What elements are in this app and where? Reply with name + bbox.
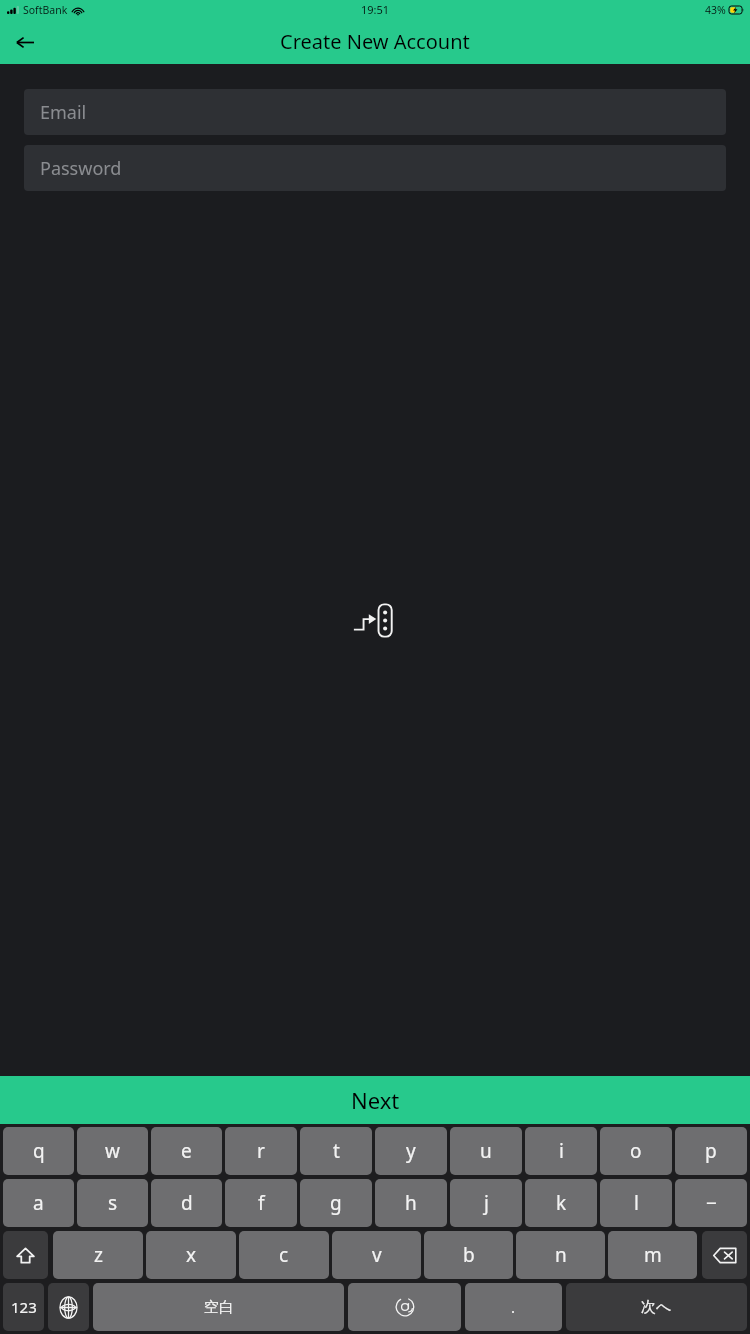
- button[interactable]: Switch keyboard: [48, 1283, 89, 1331]
- staticText: h: [405, 1190, 417, 1216]
- staticText: 43%: [705, 3, 726, 17]
- staticText: n: [555, 1242, 567, 1268]
- button[interactable]: t: [300, 1127, 372, 1175]
- staticText: Create New Account: [280, 28, 470, 55]
- staticText: a: [33, 1190, 44, 1216]
- staticText: u: [480, 1138, 492, 1164]
- button[interactable]: f: [225, 1179, 297, 1227]
- button[interactable]: h: [375, 1179, 447, 1227]
- button[interactable]: q: [3, 1127, 74, 1175]
- button[interactable]: o: [600, 1127, 672, 1175]
- button[interactable]: Backspace: [702, 1231, 747, 1279]
- staticText: j: [484, 1190, 489, 1216]
- staticText: f: [258, 1190, 265, 1216]
- staticText: Password: [40, 156, 122, 181]
- button[interactable]: −: [675, 1179, 747, 1227]
- staticText: o: [630, 1138, 642, 1164]
- button[interactable]: x: [146, 1231, 236, 1279]
- staticText: x: [186, 1242, 197, 1268]
- staticText: i: [559, 1138, 564, 1164]
- button[interactable]: k: [525, 1179, 597, 1227]
- button[interactable]: Back: [9, 26, 41, 58]
- staticText: e: [181, 1138, 192, 1164]
- staticText: g: [330, 1190, 342, 1216]
- button[interactable]: .: [465, 1283, 562, 1331]
- button[interactable]: u: [450, 1127, 522, 1175]
- staticText: 空白: [204, 1298, 234, 1317]
- button[interactable]: i: [525, 1127, 597, 1175]
- button[interactable]: m: [608, 1231, 697, 1279]
- staticText: w: [105, 1138, 120, 1164]
- button[interactable]: e: [151, 1127, 222, 1175]
- staticText: q: [33, 1138, 45, 1164]
- button[interactable]: At sign: [348, 1283, 461, 1331]
- staticText: m: [644, 1242, 662, 1268]
- button[interactable]: Email: [24, 89, 726, 135]
- button[interactable]: y: [375, 1127, 447, 1175]
- button[interactable]: j: [450, 1179, 522, 1227]
- button[interactable]: a: [3, 1179, 74, 1227]
- staticText: .: [511, 1297, 516, 1317]
- staticText: −: [706, 1190, 717, 1216]
- staticText: SoftBank: [23, 3, 68, 17]
- button[interactable]: n: [516, 1231, 605, 1279]
- staticText: y: [406, 1138, 416, 1164]
- button[interactable]: 次へ: [566, 1283, 747, 1331]
- button[interactable]: Shift: [3, 1231, 48, 1279]
- staticText: p: [705, 1138, 717, 1164]
- staticText: c: [279, 1242, 289, 1268]
- button[interactable]: 123: [3, 1283, 44, 1331]
- button[interactable]: z: [53, 1231, 143, 1279]
- button[interactable]: Next: [0, 1076, 750, 1124]
- staticText: 次へ: [641, 1298, 672, 1317]
- staticText: r: [257, 1138, 265, 1164]
- button[interactable]: l: [600, 1179, 672, 1227]
- button[interactable]: 空白: [93, 1283, 344, 1331]
- staticText: z: [94, 1242, 103, 1268]
- staticText: d: [181, 1190, 193, 1216]
- button[interactable]: Password: [24, 145, 726, 191]
- staticText: l: [634, 1190, 639, 1216]
- staticText: v: [372, 1242, 382, 1268]
- staticText: k: [556, 1190, 567, 1216]
- button[interactable]: b: [424, 1231, 513, 1279]
- button[interactable]: w: [77, 1127, 148, 1175]
- staticText: b: [463, 1242, 475, 1268]
- button[interactable]: c: [239, 1231, 329, 1279]
- button[interactable]: d: [151, 1179, 222, 1227]
- button[interactable]: v: [332, 1231, 421, 1279]
- button[interactable]: p: [675, 1127, 747, 1175]
- button[interactable]: g: [300, 1179, 372, 1227]
- staticText: Email: [40, 100, 87, 125]
- staticText: Next: [351, 1085, 400, 1115]
- button[interactable]: r: [225, 1127, 297, 1175]
- staticText: t: [333, 1138, 340, 1164]
- button[interactable]: s: [77, 1179, 148, 1227]
- staticText: s: [108, 1190, 118, 1216]
- staticText: 123: [11, 1297, 37, 1317]
- staticText: 19:51: [361, 2, 390, 17]
